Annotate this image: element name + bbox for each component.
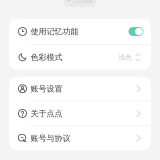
button[interactable]: 账号设置 bbox=[9, 77, 151, 101]
button[interactable]: 使用记忆功能 bbox=[9, 19, 151, 44]
staticText: 点点设置 bbox=[73, 0, 93, 4]
button[interactable]: 账号与协议 bbox=[9, 126, 151, 150]
staticText: 账号与协议 bbox=[30, 133, 70, 143]
button[interactable]: 色彩模式 bbox=[9, 45, 151, 70]
staticText: 关于点点 bbox=[30, 109, 62, 118]
staticText: 色彩模式 bbox=[30, 52, 62, 62]
staticText: 浅色 bbox=[118, 53, 132, 61]
button[interactable]: 关于点点 bbox=[9, 101, 151, 125]
staticText: 使用记忆功能 bbox=[30, 27, 78, 36]
button[interactable]: 点点设置 bbox=[63, 0, 97, 7]
staticText: 账号设置 bbox=[30, 84, 62, 94]
